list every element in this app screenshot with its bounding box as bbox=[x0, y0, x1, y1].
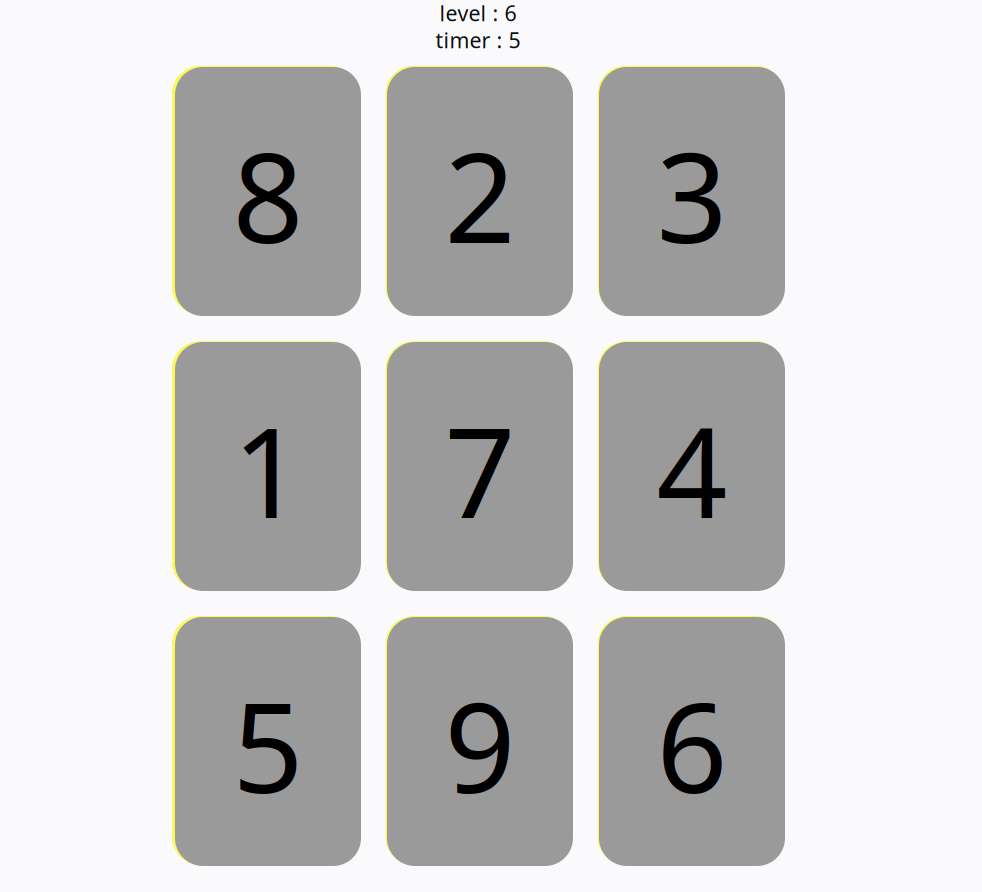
button[interactable]: 4 bbox=[599, 342, 785, 591]
staticText: 7 bbox=[444, 388, 515, 552]
staticText: timer : 5 bbox=[435, 26, 520, 54]
staticText: 8 bbox=[232, 113, 303, 277]
staticText: 4 bbox=[656, 388, 727, 552]
staticText: 3 bbox=[656, 113, 727, 277]
button[interactable]: 8 bbox=[175, 67, 361, 316]
button[interactable]: 2 bbox=[387, 67, 573, 316]
staticText: 6 bbox=[656, 663, 727, 827]
staticText: 5 bbox=[232, 663, 303, 827]
staticText: 1 bbox=[232, 388, 303, 552]
staticText: 9 bbox=[444, 663, 515, 827]
button[interactable]: 1 bbox=[175, 342, 361, 591]
staticText: level : 6 bbox=[439, 0, 516, 27]
staticText: 2 bbox=[444, 113, 515, 277]
button[interactable]: 3 bbox=[599, 67, 785, 316]
button[interactable]: 9 bbox=[387, 617, 573, 866]
button[interactable]: 6 bbox=[599, 617, 785, 866]
button[interactable]: 5 bbox=[175, 617, 361, 866]
button[interactable]: 7 bbox=[387, 342, 573, 591]
